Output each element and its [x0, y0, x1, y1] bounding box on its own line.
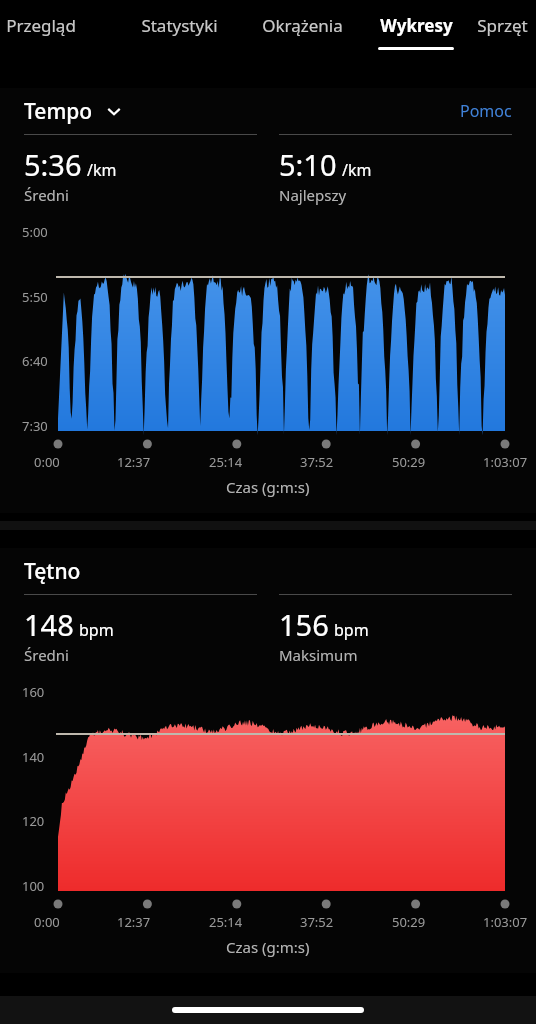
button[interactable]: Okrążenia [240, 0, 364, 60]
staticText: 6:40 [22, 352, 48, 366]
staticText: 12:37 [117, 453, 151, 471]
staticText: 25:14 [209, 453, 243, 471]
staticText: 120 [22, 812, 45, 826]
staticText: Najlepszy [279, 185, 347, 205]
staticText: 5:00 [22, 223, 48, 237]
button[interactable]: 5:10 [279, 145, 512, 205]
staticText: Czas (g:m:s) [226, 937, 310, 957]
staticText: 50:29 [392, 913, 426, 931]
staticText: Okrążenia [262, 14, 343, 37]
staticText: 12:37 [117, 913, 151, 931]
button[interactable]: Przegląd [0, 0, 100, 60]
staticText: 1:03:07 [483, 913, 528, 931]
staticText: 140 [22, 748, 45, 762]
button[interactable]: Tętno [24, 548, 512, 594]
staticText: Sprzęt [477, 14, 528, 37]
staticText: 156 [279, 605, 329, 644]
staticText: Średni [24, 645, 69, 665]
staticText: 160 [22, 683, 45, 697]
staticText: Średni [24, 185, 69, 205]
staticText: Wykresy [380, 14, 453, 37]
staticText: 5:50 [22, 288, 48, 302]
button[interactable]: 5:36 [24, 145, 257, 205]
staticText: 37:52 [300, 453, 334, 471]
staticText: 1:03:07 [483, 453, 528, 471]
button[interactable]: Tempo [24, 88, 512, 134]
staticText: Przegląd [6, 14, 76, 37]
button[interactable]: 148 [24, 605, 257, 665]
staticText: 0:00 [34, 453, 60, 471]
button[interactable]: Sprzęt [468, 0, 536, 60]
staticText: 37:52 [300, 913, 334, 931]
staticText: Maksimum [279, 645, 358, 665]
staticText: 0:00 [34, 913, 60, 931]
staticText: 5:10 [279, 145, 337, 184]
staticText: bpm [334, 619, 369, 641]
staticText: 100 [22, 877, 45, 891]
staticText: 50:29 [392, 453, 426, 471]
staticText: /km [342, 159, 372, 181]
button[interactable]: Wykresy [364, 0, 468, 60]
staticText: 7:30 [22, 417, 48, 431]
staticText: bpm [79, 619, 114, 641]
staticText: Czas (g:m:s) [226, 477, 310, 497]
staticText: 25:14 [209, 913, 243, 931]
staticText: 5:36 [24, 145, 82, 184]
staticText: Tempo [24, 97, 93, 126]
staticText: Tętno [24, 557, 81, 586]
staticText: Statystyki [141, 14, 218, 37]
staticText: Pomoc [460, 100, 512, 122]
staticText: 148 [24, 605, 74, 644]
staticText: /km [87, 159, 117, 181]
button[interactable]: Pomoc [460, 100, 512, 122]
button[interactable]: Statystyki [118, 0, 240, 60]
button[interactable]: 156 [279, 605, 512, 665]
